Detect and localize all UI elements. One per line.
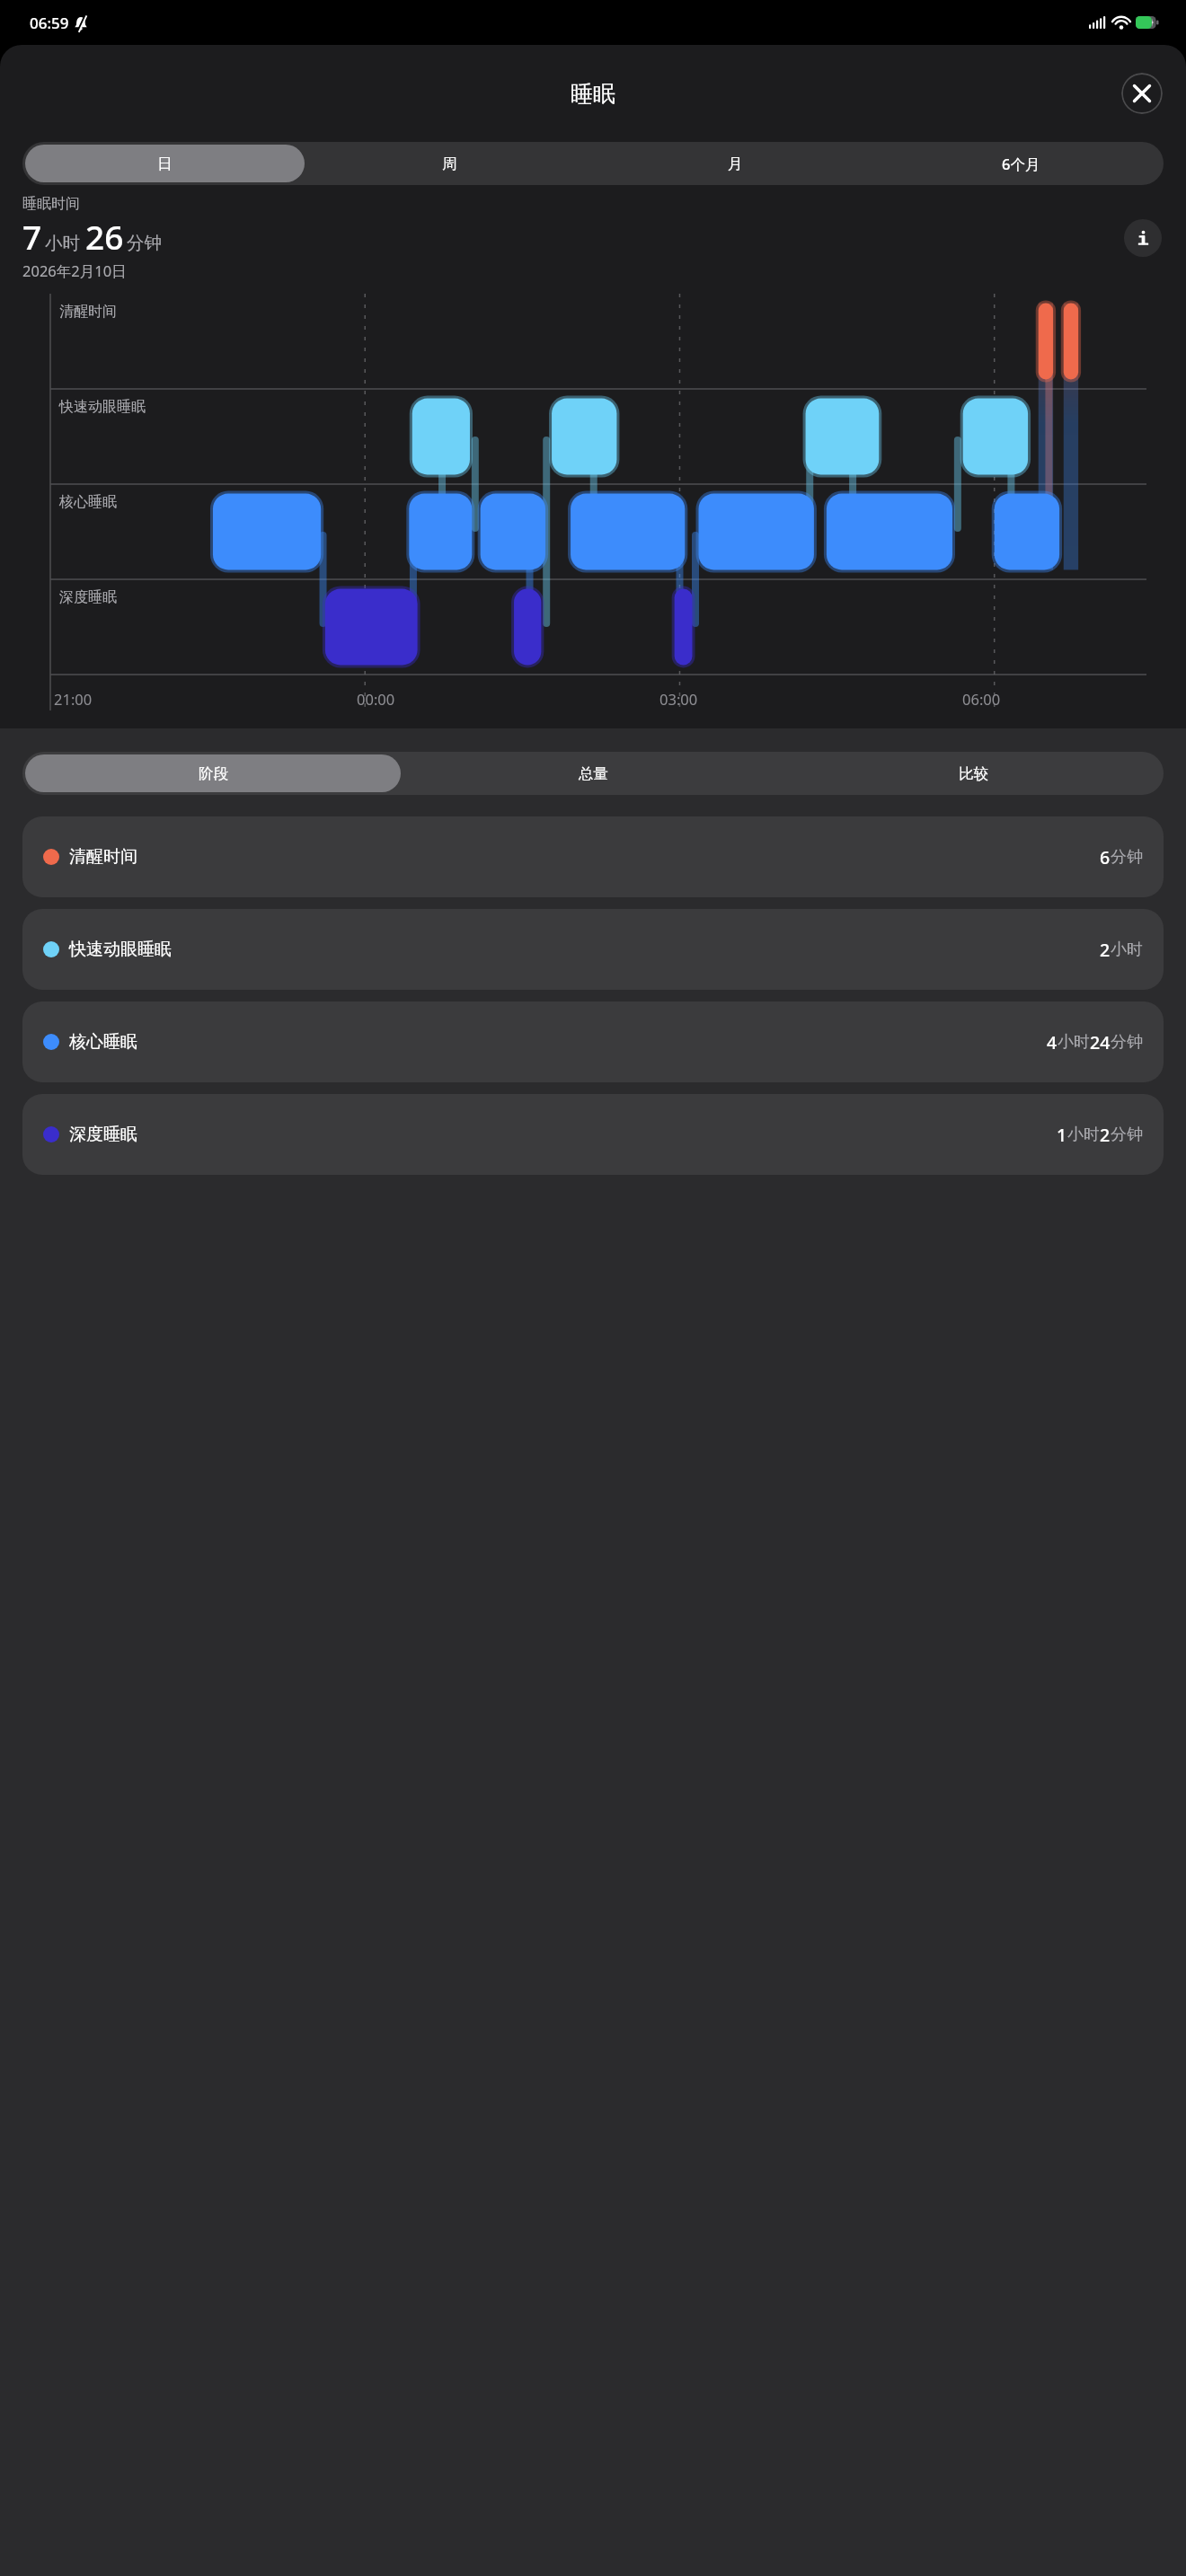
staticText: 03:00 — [659, 689, 698, 709]
staticText: 小时 — [45, 232, 80, 254]
staticText: 小时 — [1111, 940, 1143, 960]
staticText: 快速动眼睡眠 — [59, 398, 146, 416]
staticText: 24 — [1090, 1030, 1111, 1054]
staticText: 分钟 — [1111, 847, 1143, 868]
staticText: 分钟 — [127, 232, 162, 254]
staticText: 6个月 — [1002, 154, 1040, 174]
button[interactable]: 阶段 — [25, 754, 401, 792]
staticText: 4 — [1047, 1030, 1058, 1054]
button[interactable]: 信息 — [1124, 219, 1162, 257]
button[interactable]: 深度睡眠 — [22, 1094, 1164, 1175]
staticText: 周 — [442, 154, 457, 173]
button[interactable]: 6个月 — [881, 145, 1161, 182]
staticText: 分钟 — [1111, 1125, 1143, 1145]
button[interactable]: 关闭 — [1121, 73, 1163, 114]
staticText: 00:00 — [357, 689, 395, 709]
staticText: 06:59 — [30, 13, 69, 33]
staticText: 快速动眼睡眠 — [69, 939, 172, 960]
staticText: 深度睡眠 — [69, 1124, 137, 1145]
staticText: 1 — [1057, 1123, 1067, 1147]
staticText: 核心睡眠 — [69, 1031, 137, 1053]
staticText: 分钟 — [1111, 1032, 1143, 1053]
staticText: 2 — [1100, 938, 1111, 962]
staticText: 2 — [1100, 1123, 1111, 1147]
staticText: 6 — [1100, 845, 1111, 869]
button[interactable]: 核心睡眠 — [22, 1001, 1164, 1082]
button[interactable]: 清醒时间 — [22, 816, 1164, 897]
staticText: 06:00 — [962, 689, 1001, 709]
staticText: 睡眠 — [571, 80, 615, 108]
staticText: 26 — [85, 214, 124, 259]
staticText: 小时 — [1058, 1032, 1090, 1053]
staticText: 月 — [728, 154, 743, 173]
staticText: 2026年2月10日 — [22, 260, 127, 281]
button[interactable]: 日 — [25, 145, 305, 182]
staticText: 总量 — [579, 764, 608, 783]
staticText: 小时 — [1067, 1125, 1100, 1145]
staticText: 核心睡眠 — [59, 493, 117, 511]
button[interactable]: 周 — [310, 145, 589, 182]
staticText: 比较 — [959, 764, 988, 783]
staticText: 清醒时间 — [69, 846, 137, 868]
staticText: 清醒时间 — [59, 303, 117, 321]
button[interactable]: 快速动眼睡眠 — [22, 909, 1164, 990]
staticText: 日 — [157, 154, 173, 173]
staticText: 阶段 — [199, 764, 228, 783]
button[interactable]: 总量 — [406, 754, 781, 792]
staticText: 21:00 — [54, 689, 93, 709]
staticText: 7 — [22, 214, 42, 259]
staticText: 深度睡眠 — [59, 588, 117, 606]
button[interactable]: 比较 — [786, 754, 1161, 792]
staticText: 睡眠时间 — [22, 195, 80, 213]
button[interactable]: 月 — [595, 145, 875, 182]
